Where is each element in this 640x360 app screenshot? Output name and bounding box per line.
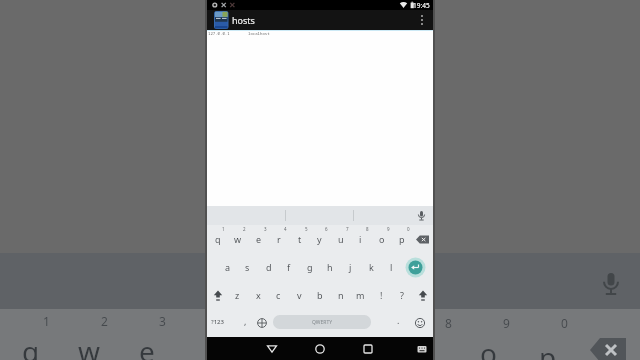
button[interactable]: l — [381, 253, 402, 281]
button[interactable]: . — [390, 306, 406, 334]
staticText: u — [338, 233, 344, 245]
button[interactable]: k — [361, 253, 382, 281]
staticText: z — [235, 289, 240, 301]
staticText: 9 — [387, 226, 390, 232]
button[interactable] — [411, 309, 429, 337]
staticText: w — [78, 332, 101, 360]
staticText: 1 — [222, 226, 225, 232]
staticText: p — [399, 233, 405, 245]
staticText: QWERTY — [312, 319, 333, 326]
button[interactable] — [412, 225, 433, 253]
button[interactable]: QWERTY — [273, 315, 371, 329]
staticText: v — [297, 289, 302, 301]
button[interactable]: z — [227, 281, 248, 309]
button[interactable] — [404, 256, 427, 279]
button[interactable]: ? — [391, 281, 412, 309]
staticText: a — [225, 261, 231, 273]
button[interactable]: v — [289, 281, 310, 309]
button[interactable]: ?123 — [204, 308, 230, 336]
button[interactable] — [264, 341, 280, 357]
staticText: 5 — [305, 226, 308, 232]
staticText: 9 — [503, 315, 510, 331]
staticText: w — [234, 233, 242, 245]
button[interactable]: n — [330, 281, 351, 309]
staticText: ? — [400, 289, 404, 301]
staticText: b — [317, 289, 323, 301]
button[interactable]: f — [278, 253, 299, 281]
button[interactable]: p — [391, 225, 412, 253]
button[interactable]: u — [330, 225, 351, 253]
button[interactable]: e — [248, 225, 269, 253]
staticText: 3 — [264, 226, 267, 232]
staticText: d — [266, 261, 272, 273]
button[interactable] — [414, 207, 429, 225]
staticText: h — [327, 261, 333, 273]
staticText: q — [22, 332, 40, 360]
staticText: 3 — [159, 313, 166, 329]
staticText: j — [349, 261, 352, 273]
button[interactable] — [207, 281, 228, 309]
button[interactable]: y — [309, 225, 330, 253]
staticText: y — [317, 233, 322, 245]
button[interactable] — [253, 309, 271, 337]
staticText: 1 — [43, 313, 50, 329]
staticText: c — [276, 289, 281, 301]
staticText: p — [539, 338, 557, 360]
button[interactable]: w — [227, 225, 248, 253]
staticText: localhost — [248, 31, 270, 36]
button[interactable]: ! — [371, 281, 392, 309]
staticText: t — [298, 233, 302, 245]
button[interactable]: a — [217, 253, 238, 281]
button[interactable] — [415, 11, 429, 29]
staticText: s — [245, 261, 250, 273]
staticText: o — [480, 334, 497, 360]
button[interactable]: b — [309, 281, 330, 309]
staticText: g — [307, 261, 313, 273]
staticText: x — [256, 289, 261, 301]
staticText: k — [369, 261, 374, 273]
button[interactable]: s — [237, 253, 258, 281]
staticText: e — [139, 332, 155, 360]
staticText: f — [287, 261, 291, 273]
button[interactable]: q — [207, 225, 228, 253]
button[interactable]: x — [248, 281, 269, 309]
staticText: r — [277, 233, 281, 245]
staticText: 19:45 — [413, 1, 430, 10]
staticText: 8 — [445, 315, 452, 331]
staticText: 8 — [366, 226, 369, 232]
button[interactable]: m — [350, 281, 371, 309]
staticText: q — [215, 233, 221, 245]
staticText: e — [256, 233, 262, 245]
staticText: . — [397, 314, 400, 326]
staticText: n — [338, 289, 344, 301]
button[interactable]: , — [237, 307, 253, 335]
staticText: 0 — [561, 315, 568, 331]
button[interactable] — [312, 341, 328, 357]
staticText: 4 — [284, 226, 287, 232]
staticText: hosts — [232, 14, 255, 26]
staticText: 2 — [101, 313, 108, 329]
staticText: l — [390, 261, 393, 273]
staticText: 0 — [407, 226, 410, 232]
button[interactable] — [360, 341, 376, 357]
staticText: 6 — [325, 226, 328, 232]
staticText: 7 — [346, 226, 349, 232]
button[interactable]: h — [319, 253, 340, 281]
staticText: m — [356, 289, 365, 301]
staticText: ! — [380, 289, 383, 301]
staticText: o — [379, 233, 385, 245]
button[interactable]: d — [258, 253, 279, 281]
button[interactable]: i — [350, 225, 371, 253]
staticText: 2 — [243, 226, 246, 232]
button[interactable]: o — [371, 225, 392, 253]
button[interactable] — [214, 11, 229, 29]
button[interactable]: r — [268, 225, 289, 253]
button[interactable]: j — [340, 253, 361, 281]
button[interactable] — [414, 341, 430, 357]
button[interactable] — [412, 281, 433, 309]
button[interactable]: g — [299, 253, 320, 281]
button[interactable]: c — [268, 281, 289, 309]
button[interactable]: t — [289, 225, 310, 253]
staticText: i — [359, 233, 362, 245]
